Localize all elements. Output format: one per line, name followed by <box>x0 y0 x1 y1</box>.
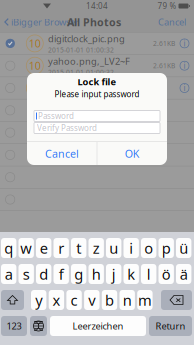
button[interactable]: p <box>158 238 174 258</box>
button[interactable]: c <box>66 290 82 310</box>
staticText: Return <box>155 320 185 332</box>
staticText: w <box>20 238 32 258</box>
staticText: OK <box>125 146 140 161</box>
staticText: b <box>105 290 114 310</box>
staticText: s <box>23 264 30 284</box>
button[interactable]: j <box>106 264 121 284</box>
staticText: yahoo.png,_LV2~F <box>48 55 130 67</box>
button[interactable]: h <box>88 264 104 284</box>
staticText: y <box>35 290 42 310</box>
staticText: c <box>71 290 78 310</box>
button[interactable]: 123 <box>1 316 27 336</box>
button[interactable]: k <box>123 264 139 284</box>
staticText: d <box>39 264 48 284</box>
staticText: r <box>58 238 64 258</box>
staticText: i <box>129 238 133 258</box>
staticText: Leerzeichen <box>72 320 123 332</box>
button[interactable]: u <box>106 238 121 258</box>
button[interactable]: ä <box>176 264 191 284</box>
button[interactable]: s <box>18 264 34 284</box>
button[interactable]: Return <box>149 316 192 336</box>
button[interactable]: i <box>123 238 139 258</box>
staticText: q <box>4 238 13 258</box>
button[interactable]: e <box>36 238 51 258</box>
button[interactable]: a <box>1 264 16 284</box>
staticText: j <box>112 264 116 284</box>
staticText: i <box>183 83 185 93</box>
button[interactable]: OK <box>97 142 167 165</box>
staticText: Cancel <box>158 16 186 28</box>
button[interactable]: n <box>119 290 135 310</box>
staticText: f <box>59 264 64 284</box>
staticText: 79 % <box>157 1 176 11</box>
staticText: Verify Password <box>37 123 97 133</box>
button[interactable]: Next keyboard <box>30 316 47 336</box>
staticText: k <box>127 264 135 284</box>
staticText: i <box>183 60 185 71</box>
staticText: h <box>92 264 101 284</box>
staticText: digitclock_pic.png <box>48 32 125 45</box>
button[interactable]: Cancel <box>27 142 97 165</box>
staticText: x <box>52 290 60 310</box>
staticText: iBigger Browser <box>11 16 79 28</box>
staticText: 14:04 <box>86 1 108 11</box>
staticText: 2015-01-01 01:00:32 <box>48 45 114 54</box>
button[interactable]: ü <box>176 238 191 258</box>
button[interactable]: Cancel <box>157 12 187 32</box>
staticText: o <box>144 238 153 258</box>
button[interactable]: ö <box>158 264 174 284</box>
staticText: Please input password <box>54 89 139 99</box>
button[interactable]: b <box>102 290 117 310</box>
button[interactable]: o <box>141 238 156 258</box>
staticText: 123 <box>6 320 21 332</box>
staticText: Cancel <box>45 146 79 161</box>
staticText: m <box>138 290 152 310</box>
staticText: e <box>40 238 48 258</box>
staticText: v <box>88 290 95 310</box>
staticText: t <box>76 238 81 258</box>
button[interactable]: w <box>18 238 34 258</box>
button[interactable]: z <box>88 238 104 258</box>
staticText: z <box>93 238 100 258</box>
button[interactable]: d <box>36 264 51 284</box>
staticText: u <box>109 238 118 258</box>
staticText: p <box>162 238 171 258</box>
button[interactable]: r <box>53 238 69 258</box>
button[interactable]: v <box>84 290 99 310</box>
button[interactable]: g <box>71 264 86 284</box>
button[interactable]: Shift <box>1 290 24 310</box>
button[interactable]: Info <box>180 61 189 70</box>
staticText: ä <box>180 264 188 284</box>
staticText: ö <box>162 264 171 284</box>
staticText: All Photos <box>67 15 121 29</box>
button[interactable]: Leerzeichen <box>50 316 146 336</box>
staticText: 2.61KB <box>153 39 175 48</box>
button[interactable]: l <box>141 264 156 284</box>
staticText: Password <box>38 111 74 121</box>
staticText: Lock file <box>77 75 116 88</box>
staticText: 2015-01-01 01:00:32 <box>48 68 114 77</box>
staticText: i <box>183 38 185 49</box>
button[interactable]: y <box>31 290 46 310</box>
button[interactable]: x <box>49 290 64 310</box>
button[interactable]: t <box>71 238 86 258</box>
staticText: 10 <box>29 59 41 73</box>
button[interactable]: iBigger Browser <box>4 12 79 32</box>
button[interactable]: f <box>53 264 69 284</box>
staticText: 2.61KB <box>153 61 175 70</box>
staticText: 10 <box>29 36 41 50</box>
staticText: ü <box>179 238 188 258</box>
staticText: n <box>123 290 132 310</box>
button[interactable]: q <box>1 238 16 258</box>
staticText: a <box>5 264 13 284</box>
button[interactable]: Info <box>180 39 189 48</box>
staticText: g <box>74 264 83 284</box>
staticText: l <box>147 264 151 284</box>
button[interactable]: Delete <box>161 290 192 310</box>
button[interactable]: m <box>137 290 153 310</box>
button[interactable]: Info <box>180 83 189 92</box>
